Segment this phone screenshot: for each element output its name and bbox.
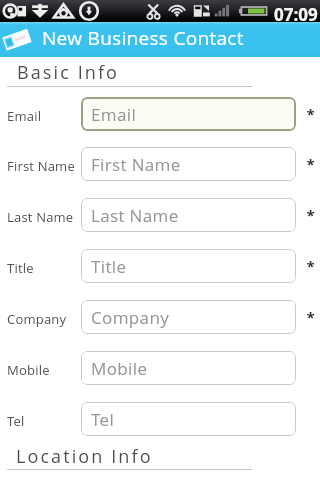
staticText: * <box>306 307 315 327</box>
button[interactable]: Business card <box>0 22 320 57</box>
button[interactable]: Email <box>81 97 296 131</box>
staticText: Basic Info <box>17 60 120 85</box>
button[interactable]: Last Name <box>81 198 296 232</box>
staticText: Last Name <box>91 204 179 227</box>
other: Warning <box>53 2 74 20</box>
other: Silent mode <box>147 2 160 20</box>
staticText: Company <box>91 306 170 329</box>
button[interactable]: Mobile <box>81 351 296 385</box>
staticText: New Business Contact <box>42 25 244 51</box>
staticText: First Name <box>91 153 181 176</box>
staticText: Tel <box>7 412 25 430</box>
other: Storage <box>193 2 213 20</box>
other: Download <box>31 2 49 20</box>
staticText: Email <box>7 107 42 125</box>
other: Alert <box>78 2 100 20</box>
staticText: * <box>306 205 315 225</box>
staticText: Last Name <box>7 208 74 226</box>
other: Camera recording <box>3 2 27 20</box>
other: Business card <box>1 25 33 55</box>
button[interactable]: Tel <box>81 402 296 436</box>
other: Signal strength <box>214 2 230 20</box>
staticText: Title <box>91 255 127 278</box>
staticText: First Name <box>7 157 75 175</box>
staticText: * <box>306 154 315 174</box>
staticText: Tel <box>91 408 115 431</box>
button[interactable]: Company <box>81 300 296 334</box>
staticText: * <box>306 104 315 124</box>
button[interactable]: Title <box>81 249 296 283</box>
staticText: Location Info <box>16 444 153 469</box>
staticText: * <box>306 256 315 276</box>
staticText: Mobile <box>91 357 148 380</box>
staticText: Email <box>91 103 137 126</box>
staticText: Mobile <box>7 361 50 379</box>
staticText: 07:09 <box>274 3 318 25</box>
button[interactable]: First Name <box>81 147 296 181</box>
staticText: Title <box>7 259 34 277</box>
other: Battery <box>239 2 269 20</box>
staticText: Company <box>7 310 67 328</box>
other: Wi-Fi <box>167 2 187 20</box>
